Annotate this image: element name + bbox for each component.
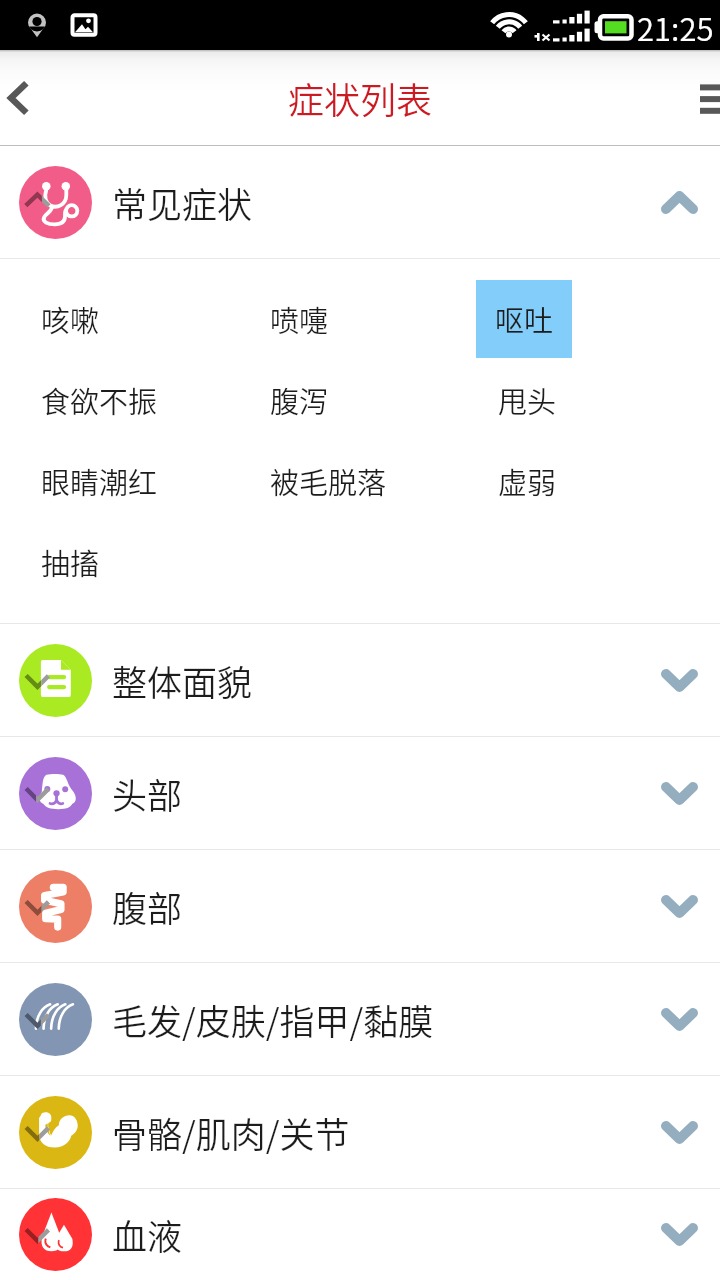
staticText: 虚弱 bbox=[498, 460, 557, 502]
staticText: 毛发/皮肤/指甲/黏膜 bbox=[112, 994, 434, 1045]
button[interactable]: Back bbox=[0, 50, 64, 145]
staticText: 骨骼/肌肉/关节 bbox=[112, 1107, 350, 1158]
staticText: 腹泻 bbox=[270, 379, 329, 421]
button[interactable]: 咳嗽 bbox=[41, 280, 100, 358]
button[interactable]: 呕吐 bbox=[476, 280, 572, 358]
staticText: 常见症状 bbox=[112, 177, 253, 228]
staticText: 腹部 bbox=[112, 881, 183, 932]
button[interactable]: 毛发/皮肤/指甲/黏膜 bbox=[0, 963, 720, 1075]
button[interactable]: 眼睛潮红 bbox=[41, 442, 158, 520]
staticText: 21:25 bbox=[637, 5, 714, 50]
button[interactable]: 甩头 bbox=[498, 361, 557, 439]
staticText: 血液 bbox=[112, 1209, 183, 1260]
staticText: 甩头 bbox=[498, 379, 557, 421]
staticText: 呕吐 bbox=[495, 298, 554, 340]
button[interactable]: 被毛脱落 bbox=[270, 442, 387, 520]
button[interactable]: Menu bbox=[674, 50, 720, 145]
button[interactable]: 骨骼/肌肉/关节 bbox=[0, 1076, 720, 1188]
staticText: 喷嚏 bbox=[270, 298, 329, 340]
staticText: 眼睛潮红 bbox=[41, 460, 158, 502]
staticText: 食欲不振 bbox=[41, 379, 158, 421]
staticText: 症状列表 bbox=[288, 72, 433, 124]
button[interactable]: 虚弱 bbox=[498, 442, 557, 520]
staticText: 整体面貌 bbox=[112, 655, 253, 706]
staticText: 咳嗽 bbox=[41, 298, 100, 340]
button[interactable]: 腹部 bbox=[0, 850, 720, 962]
button[interactable]: 血液 bbox=[0, 1189, 720, 1280]
button[interactable]: 头部 bbox=[0, 737, 720, 849]
button[interactable]: 抽搐 bbox=[41, 523, 100, 601]
button[interactable]: 喷嚏 bbox=[270, 280, 329, 358]
button[interactable]: 食欲不振 bbox=[41, 361, 158, 439]
staticText: 被毛脱落 bbox=[270, 460, 387, 502]
button[interactable]: 腹泻 bbox=[270, 361, 329, 439]
staticText: 抽搐 bbox=[41, 541, 100, 583]
staticText: 头部 bbox=[112, 768, 183, 819]
button[interactable]: 常见症状 bbox=[0, 146, 720, 258]
button[interactable]: 整体面貌 bbox=[0, 624, 720, 736]
